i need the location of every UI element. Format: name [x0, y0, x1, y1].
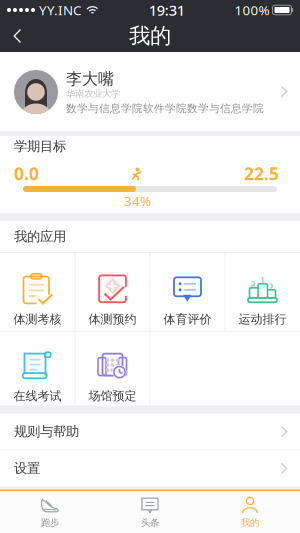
- button[interactable]: 头条: [100, 491, 200, 533]
- staticText: 跑步: [41, 517, 59, 528]
- staticText: 22.5: [244, 162, 279, 185]
- button[interactable]: 李大嘴: [0, 52, 300, 131]
- staticText: 100%: [234, 1, 269, 19]
- staticText: 场馆预定: [88, 389, 136, 403]
- staticText: 设置: [14, 460, 40, 477]
- staticText: 我的: [241, 517, 259, 528]
- button[interactable]: Back: [0, 20, 36, 52]
- staticText: 19:31: [149, 0, 185, 20]
- staticText: 头条: [141, 517, 159, 528]
- staticText: 0.0: [14, 162, 39, 185]
- staticText: 李大嘴: [66, 69, 114, 89]
- staticText: YY.INC: [39, 1, 81, 19]
- button[interactable]: 设置: [0, 450, 300, 486]
- button[interactable]: 我的: [200, 491, 300, 533]
- staticText: 体测考核: [13, 312, 61, 326]
- staticText: 我的应用: [14, 228, 66, 245]
- button[interactable]: 在线考试: [0, 330, 75, 408]
- button[interactable]: 体育评价: [150, 253, 225, 331]
- button[interactable]: 体测考核: [0, 253, 75, 331]
- button[interactable]: 规则与帮助: [0, 414, 300, 450]
- staticText: 我的: [129, 23, 171, 49]
- button[interactable]: 运动排行: [225, 253, 300, 331]
- button[interactable]: 场馆预定: [75, 330, 150, 408]
- staticText: 学期目标: [14, 138, 66, 154]
- button[interactable]: 体测预约: [75, 253, 150, 331]
- staticText: 运动排行: [238, 312, 286, 326]
- staticText: 华南农业大学: [66, 88, 120, 99]
- staticText: 数学与信息学院软件学院数学与信息学院: [66, 102, 264, 115]
- staticText: 规则与帮助: [14, 423, 79, 440]
- staticText: 34%: [124, 192, 151, 210]
- staticText: 体测预约: [88, 312, 136, 326]
- staticText: 在线考试: [13, 389, 61, 403]
- staticText: 体育评价: [163, 312, 211, 326]
- button[interactable]: 跑步: [0, 491, 100, 533]
